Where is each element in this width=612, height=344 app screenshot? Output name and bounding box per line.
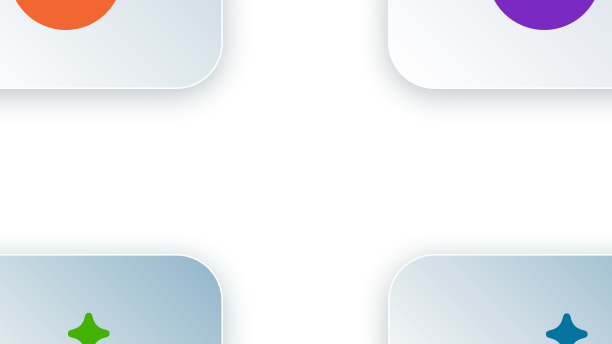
button[interactable]: [0, 0, 223, 89]
button[interactable]: [388, 254, 612, 344]
button[interactable]: [0, 254, 223, 344]
button[interactable]: [388, 0, 612, 89]
